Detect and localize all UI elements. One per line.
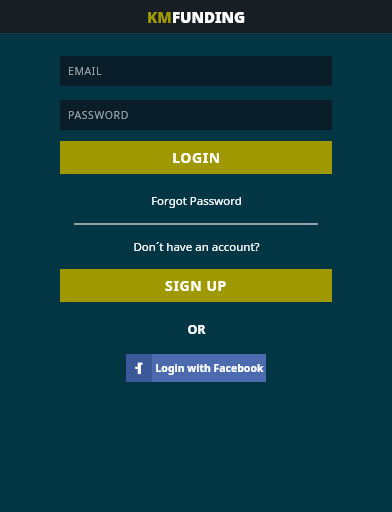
button[interactable]: LOGIN xyxy=(60,141,332,174)
staticText: KM xyxy=(147,7,172,27)
staticText: FUNDING xyxy=(172,7,246,27)
staticText: Forgot Password xyxy=(151,193,242,209)
button[interactable]: Login with Facebook xyxy=(126,354,266,382)
staticText: EMAIL xyxy=(68,64,103,78)
button[interactable]: SIGN UP xyxy=(60,269,332,302)
staticText: Login with Facebook xyxy=(155,361,264,375)
staticText: Don´t have an account? xyxy=(133,239,260,255)
button[interactable]: Don´t have an account? xyxy=(60,239,332,255)
button[interactable]: EMAIL xyxy=(60,56,332,86)
staticText: SIGN UP xyxy=(165,276,227,295)
button[interactable]: PASSWORD xyxy=(60,100,332,130)
staticText: LOGIN xyxy=(172,148,221,167)
staticText: OR xyxy=(187,321,206,338)
button[interactable]: Forgot Password xyxy=(60,193,332,209)
staticText: PASSWORD xyxy=(68,108,129,122)
